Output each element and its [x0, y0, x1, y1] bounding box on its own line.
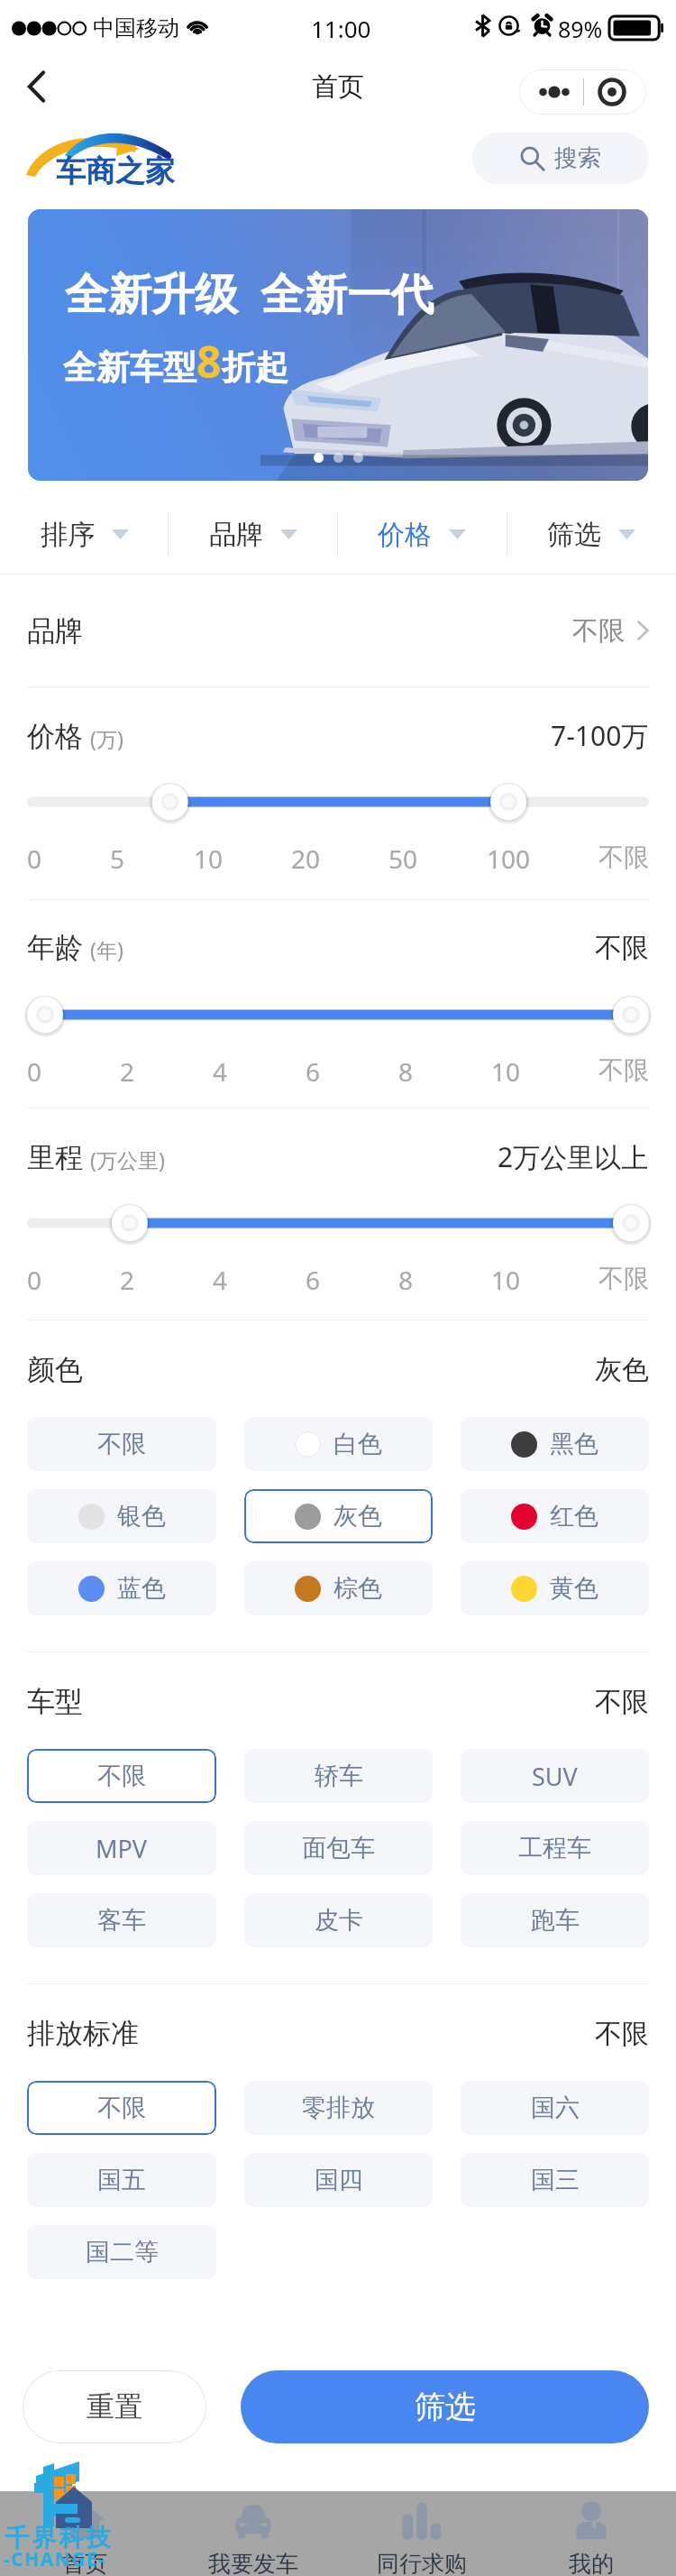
- button[interactable]: 同行求购: [337, 2491, 507, 2576]
- staticText: 中国移动: [93, 14, 179, 41]
- staticText: 国四: [315, 2165, 363, 2195]
- staticText: 50: [388, 842, 418, 876]
- staticText: 我的: [569, 2550, 614, 2576]
- button[interactable]: SUV: [461, 1749, 649, 1803]
- button[interactable]: 红色: [461, 1489, 649, 1543]
- staticText: 零排放: [302, 2093, 375, 2123]
- button[interactable]: 棕色: [244, 1561, 433, 1615]
- button[interactable]: 首页: [0, 2491, 169, 2576]
- staticText: 8: [398, 1263, 414, 1297]
- staticText: SUV: [532, 1760, 578, 1793]
- staticText: 灰色: [595, 1353, 649, 1387]
- staticText: 价格: [378, 518, 432, 552]
- staticText: 6: [306, 1263, 321, 1297]
- staticText: 不限: [598, 1263, 649, 1294]
- staticText: 皮卡: [315, 1905, 363, 1936]
- button[interactable]: 搜索: [472, 133, 649, 184]
- button[interactable]: 我要发车: [169, 2491, 337, 2576]
- button[interactable]: 价格: [337, 494, 507, 575]
- staticText: 车商之家: [56, 152, 175, 190]
- staticText: 11:00: [311, 13, 371, 44]
- button[interactable]: MPV: [27, 1821, 216, 1875]
- staticText: 国三: [531, 2165, 580, 2195]
- staticText: MPV: [96, 1832, 148, 1865]
- staticText: 价格: [27, 719, 83, 754]
- staticText: 排放标准: [27, 2016, 139, 2051]
- staticText: 跑车: [531, 1905, 580, 1936]
- button[interactable]: 不限: [27, 1417, 216, 1471]
- button[interactable]: 我的: [507, 2491, 676, 2576]
- button[interactable]: 筛选: [507, 494, 676, 575]
- staticText: 不限: [97, 1761, 146, 1791]
- button[interactable]: 灰色: [244, 1489, 433, 1543]
- button[interactable]: 零排放: [244, 2081, 433, 2135]
- staticText: 10: [491, 1263, 521, 1297]
- button[interactable]: Mini program menu: [519, 69, 646, 115]
- staticText: 重置: [87, 2389, 142, 2424]
- staticText: 0: [27, 1263, 42, 1297]
- button[interactable]: 白色: [244, 1417, 433, 1471]
- staticText: 89%: [558, 14, 603, 44]
- button[interactable]: 轿车: [244, 1749, 433, 1803]
- button[interactable]: 国五: [27, 2153, 216, 2207]
- button[interactable]: 不限: [27, 2081, 216, 2135]
- button[interactable]: 国三: [461, 2153, 649, 2207]
- button[interactable]: 国二等: [27, 2225, 216, 2279]
- staticText: 筛选: [547, 518, 601, 552]
- button[interactable]: Back: [11, 61, 61, 112]
- staticText: 蓝色: [117, 1573, 166, 1604]
- staticText: 白色: [333, 1429, 382, 1459]
- button[interactable]: 重置: [23, 2370, 206, 2443]
- staticText: 折起: [222, 346, 288, 389]
- staticText: 排序: [41, 518, 95, 552]
- staticText: -CHANGE-: [4, 2546, 106, 2572]
- staticText: 2: [120, 1054, 135, 1089]
- button[interactable]: 不限: [27, 1749, 216, 1803]
- button[interactable]: 国六: [461, 2081, 649, 2135]
- staticText: (年): [90, 935, 123, 963]
- staticText: 国五: [97, 2165, 146, 2195]
- staticText: 8: [398, 1054, 414, 1089]
- button[interactable]: 蓝色: [27, 1561, 216, 1615]
- button[interactable]: 皮卡: [244, 1893, 433, 1947]
- staticText: 搜索: [554, 143, 601, 173]
- button[interactable]: 筛选: [241, 2370, 649, 2443]
- staticText: 7-100万: [551, 717, 649, 754]
- staticText: 首页: [312, 70, 364, 104]
- staticText: 客车: [97, 1905, 146, 1936]
- button[interactable]: 客车: [27, 1893, 216, 1947]
- staticText: 我要发车: [208, 2550, 298, 2576]
- button[interactable]: 品牌: [169, 494, 337, 575]
- staticText: 6: [306, 1054, 321, 1089]
- button[interactable]: 黑色: [461, 1417, 649, 1471]
- staticText: 不限: [598, 1054, 649, 1086]
- staticText: 千界科技: [4, 2523, 112, 2553]
- button[interactable]: 品牌: [27, 575, 649, 686]
- staticText: 不限: [595, 931, 649, 965]
- staticText: 4: [213, 1054, 228, 1089]
- staticText: 不限: [572, 614, 625, 648]
- staticText: 不限: [97, 1429, 146, 1459]
- button[interactable]: 排序: [0, 494, 169, 575]
- staticText: 颜色: [27, 1352, 83, 1387]
- button[interactable]: 银色: [27, 1489, 216, 1543]
- staticText: (万公里): [90, 1145, 165, 1173]
- staticText: 全新升级 全新一代: [65, 263, 434, 323]
- staticText: 车型: [27, 1684, 83, 1719]
- staticText: 不限: [595, 2017, 649, 2051]
- staticText: 国二等: [86, 2237, 159, 2268]
- button[interactable]: 国四: [244, 2153, 433, 2207]
- staticText: 不限: [598, 842, 649, 873]
- staticText: 年龄: [27, 930, 83, 965]
- staticText: 20: [291, 842, 321, 876]
- staticText: 2: [120, 1263, 135, 1297]
- staticText: 4: [213, 1263, 228, 1297]
- button[interactable]: 面包车: [244, 1821, 433, 1875]
- button[interactable]: 全新升级 全新一代: [28, 209, 648, 481]
- button[interactable]: 黄色: [461, 1561, 649, 1615]
- button[interactable]: 工程车: [461, 1821, 649, 1875]
- staticText: 国六: [531, 2093, 580, 2123]
- staticText: 轿车: [315, 1761, 363, 1791]
- button[interactable]: 跑车: [461, 1893, 649, 1947]
- staticText: 灰色: [333, 1501, 382, 1532]
